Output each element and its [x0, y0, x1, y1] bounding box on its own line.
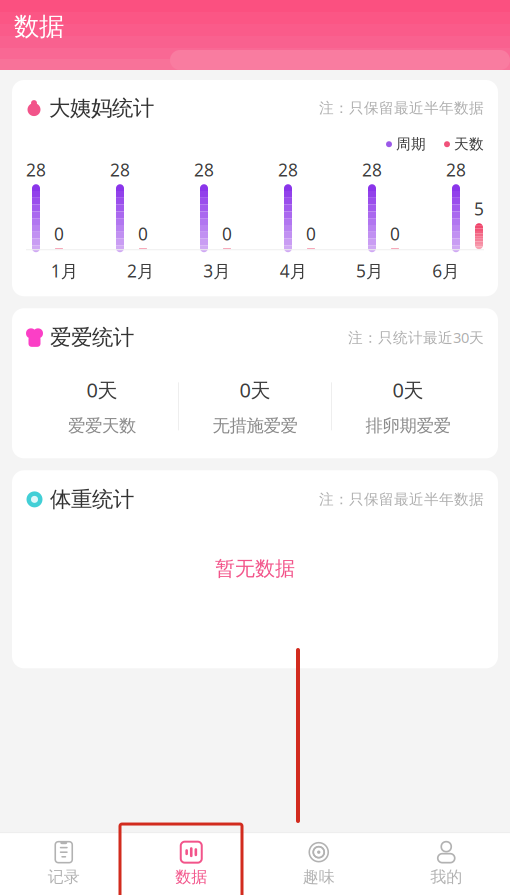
button[interactable]: 我的 [382, 833, 510, 895]
staticText: 注：只保留最近半年数据 [319, 99, 484, 117]
staticText: 暂无数据 [215, 556, 295, 581]
staticText: 趣味 [303, 867, 335, 887]
staticText: 28 [110, 158, 130, 181]
staticText: 28 [362, 158, 382, 181]
staticText: 注：只统计最近30天 [348, 328, 484, 347]
staticText: 0天 [86, 376, 117, 403]
staticText: 28 [26, 158, 46, 181]
staticText: 28 [446, 158, 466, 181]
staticText: 大姨妈统计 [49, 95, 154, 121]
staticText: 0 [138, 222, 148, 245]
staticText: 3月 [203, 259, 230, 282]
staticText: 周期 [396, 135, 426, 153]
staticText: 天数 [454, 135, 484, 153]
staticText: 注：只保留最近半年数据 [319, 490, 484, 508]
staticText: 数据 [175, 867, 207, 887]
button[interactable]: 趣味 [255, 833, 382, 895]
staticText: 0 [390, 222, 400, 245]
staticText: 无措施爱爱 [212, 415, 297, 436]
staticText: 我的 [430, 867, 462, 887]
staticText: 0 [306, 222, 316, 245]
staticText: 0 [222, 222, 232, 245]
staticText: 4月 [280, 259, 307, 282]
staticText: 0天 [239, 376, 270, 403]
staticText: 6月 [432, 259, 459, 282]
staticText: 5 [474, 197, 484, 220]
staticText: 体重统计 [50, 486, 134, 512]
button[interactable]: 记录 [0, 833, 127, 895]
staticText: 0 [54, 222, 64, 245]
staticText: 2月 [127, 259, 154, 282]
staticText: 数据 [14, 11, 64, 42]
staticText: 5月 [356, 259, 383, 282]
button[interactable]: 数据 [127, 833, 255, 895]
staticText: 排卵期爱爱 [365, 415, 450, 436]
staticText: 爱爱统计 [50, 324, 134, 350]
staticText: 28 [278, 158, 298, 181]
staticText: 28 [194, 158, 214, 181]
staticText: 1月 [51, 259, 78, 282]
staticText: 爱爱天数 [68, 415, 136, 436]
staticText: 记录 [48, 867, 80, 887]
staticText: 0天 [392, 376, 423, 403]
